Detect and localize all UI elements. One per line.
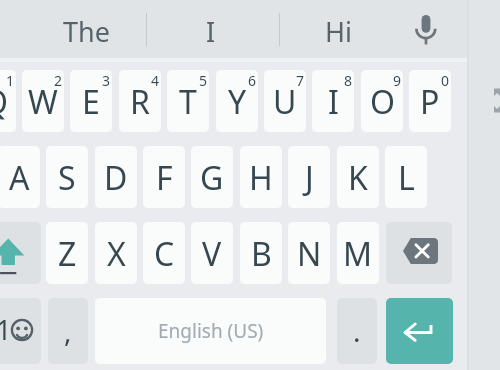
button[interactable]: Symbols and emoji (0, 298, 41, 364)
staticText: A (9, 156, 30, 200)
staticText: R (130, 80, 150, 124)
button[interactable]: B (240, 222, 282, 284)
button[interactable]: M (337, 222, 379, 284)
staticText: I (206, 13, 216, 50)
button[interactable]: Voice input (400, 0, 452, 58)
button[interactable]: E (70, 70, 112, 132)
staticText: J (305, 156, 314, 200)
button[interactable]: A (0, 146, 40, 208)
button[interactable]: C (143, 222, 185, 284)
button[interactable]: J (288, 146, 330, 208)
button[interactable]: I (150, 0, 272, 58)
button[interactable]: Q (0, 70, 16, 132)
button[interactable]: L (385, 146, 427, 208)
staticText: Y (228, 80, 247, 124)
button[interactable]: The (27, 0, 146, 58)
staticText: E (82, 80, 100, 124)
staticText: 1 (6, 71, 15, 90)
staticText: F (156, 156, 173, 200)
staticText: English (US) (158, 318, 264, 344)
button[interactable]: Shift caps lock (0, 222, 41, 284)
button[interactable]: I (312, 70, 354, 132)
button[interactable]: Y (216, 70, 258, 132)
button[interactable]: W (22, 70, 64, 132)
staticText: 6 (248, 71, 257, 90)
staticText: 8 (344, 71, 353, 90)
staticText: D (104, 156, 128, 200)
staticText: Hi (325, 13, 352, 50)
staticText: L (398, 156, 415, 200)
button[interactable]: P (409, 70, 451, 132)
button[interactable]: O (361, 70, 403, 132)
staticText: . (353, 312, 361, 350)
staticText: 0 (441, 71, 450, 90)
button[interactable]: . (337, 298, 377, 364)
staticText: Q (0, 80, 8, 124)
staticText: Z (58, 232, 77, 276)
staticText: 5 (199, 71, 208, 90)
staticText: M (343, 232, 373, 276)
staticText: G (200, 156, 224, 200)
staticText: B (251, 232, 272, 276)
staticText: S (58, 156, 76, 200)
button[interactable]: S (46, 146, 88, 208)
button[interactable]: K (337, 146, 379, 208)
button[interactable]: F (143, 146, 185, 208)
staticText: C (154, 232, 175, 276)
staticText: T (179, 80, 197, 124)
staticText: H (249, 156, 273, 200)
staticText: O (370, 80, 395, 124)
button[interactable]: Enter (386, 298, 453, 364)
staticText: 4 (151, 71, 160, 90)
button[interactable]: V (191, 222, 233, 284)
staticText: 3 (102, 71, 111, 90)
staticText: 9 (393, 71, 402, 90)
button[interactable]: D (95, 146, 137, 208)
button[interactable]: English (US) (95, 298, 326, 364)
staticText: X (107, 232, 126, 276)
button[interactable]: X (95, 222, 137, 284)
staticText: 1 (0, 311, 12, 348)
button[interactable]: N (288, 222, 330, 284)
button[interactable]: G (191, 146, 233, 208)
button[interactable]: , (48, 298, 88, 364)
button[interactable]: Z (46, 222, 88, 284)
staticText: K (348, 156, 368, 200)
staticText: The (63, 13, 110, 50)
button[interactable]: Hi (283, 0, 393, 58)
button[interactable]: H (240, 146, 282, 208)
staticText: I (328, 80, 339, 124)
button[interactable]: R (119, 70, 161, 132)
staticText: 7 (296, 71, 305, 90)
button[interactable]: T (167, 70, 209, 132)
button[interactable]: U (264, 70, 306, 132)
staticText: V (202, 232, 222, 276)
staticText: W (28, 80, 58, 124)
staticText: 2 (54, 71, 63, 90)
staticText: U (273, 80, 297, 124)
staticText: N (297, 232, 322, 276)
staticText: P (420, 80, 440, 124)
button[interactable]: Backspace (386, 222, 452, 284)
staticText: , (64, 312, 72, 350)
